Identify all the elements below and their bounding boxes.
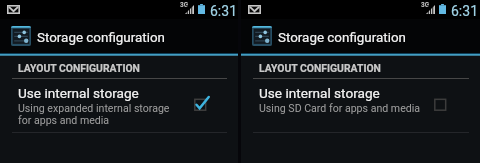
button[interactable]: Storage configuration icon — [11, 26, 31, 46]
staticText: Using expanded internal storage for apps… — [18, 102, 170, 127]
button[interactable]: Use internal storage — [0, 79, 238, 134]
staticText: Using SD Card for apps and media — [259, 102, 421, 114]
button[interactable]: Use internal storage — [241, 79, 480, 134]
staticText: 6:31 — [210, 3, 237, 19]
staticText: Use internal storage — [18, 85, 139, 101]
staticText: LAYOUT CONFIGURATION — [18, 62, 140, 74]
button[interactable]: Use internal storage toggle — [434, 95, 450, 111]
staticText: 6:31 — [451, 3, 478, 19]
button[interactable]: Storage configuration icon — [252, 26, 272, 46]
staticText: 3G — [180, 1, 189, 9]
staticText: Storage configuration — [37, 30, 165, 46]
staticText: Storage configuration — [278, 30, 406, 46]
staticText: 3G — [421, 1, 430, 9]
button[interactable]: Use internal storage toggle — [194, 95, 210, 111]
staticText: Use internal storage — [259, 85, 380, 101]
staticText: LAYOUT CONFIGURATION — [259, 62, 381, 74]
